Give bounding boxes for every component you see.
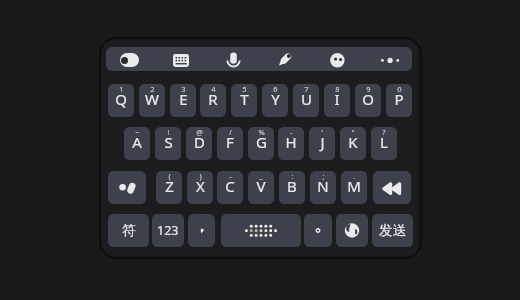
staticText: D [194, 132, 205, 152]
staticText: O [362, 89, 374, 109]
staticText: 0 [397, 84, 402, 94]
staticText: T [240, 89, 249, 109]
staticText: 123 [157, 222, 179, 239]
button[interactable]: 4 [200, 84, 226, 117]
staticText: Q [115, 89, 127, 109]
button[interactable]: 1 [108, 84, 134, 117]
button[interactable]: 123 [152, 214, 184, 247]
button[interactable]: Toggle keyboard mode [120, 53, 139, 67]
staticText: F [226, 132, 234, 152]
button[interactable]: : [279, 171, 305, 204]
staticText: ! [167, 127, 170, 137]
staticText: - [229, 171, 232, 181]
staticText: J [320, 132, 325, 152]
button[interactable]: Backspace [373, 171, 411, 204]
button[interactable]: ? [371, 127, 397, 160]
button[interactable]: 6 [262, 84, 288, 117]
button[interactable]: 7 [293, 84, 319, 117]
staticText: H [285, 132, 297, 152]
staticText: _ [259, 171, 263, 181]
staticText: @ [196, 127, 203, 137]
staticText: . [353, 171, 356, 181]
button[interactable]: - [217, 171, 243, 204]
button[interactable]: - [278, 127, 304, 160]
staticText: X [196, 176, 205, 196]
staticText: Z [165, 176, 174, 196]
staticText: : [291, 171, 294, 181]
button[interactable]: % [248, 127, 274, 160]
staticText: 5 [242, 84, 247, 94]
button[interactable]: ~ [124, 127, 150, 160]
button[interactable]: ' [309, 127, 335, 160]
staticText: ' [321, 127, 323, 137]
staticText: 9 [366, 84, 371, 94]
staticText: 发送 [379, 222, 406, 239]
staticText: 6 [273, 84, 278, 94]
staticText: % [258, 127, 265, 137]
button[interactable]: " [340, 127, 366, 160]
staticText: C [225, 176, 235, 196]
staticText: M [347, 176, 361, 196]
button[interactable]: 符 [108, 214, 149, 247]
staticText: P [394, 89, 404, 109]
button[interactable]: Emoji [330, 53, 345, 68]
staticText: 符 [122, 222, 136, 239]
button[interactable]: 3 [170, 84, 196, 117]
button[interactable]: Keyboard layout [173, 54, 189, 67]
staticText: K [348, 132, 358, 152]
button[interactable]: 8 [324, 84, 350, 117]
button[interactable]: 0 [386, 84, 412, 117]
staticText: 8 [335, 84, 340, 94]
staticText: ) [199, 171, 202, 181]
button[interactable]: Switch language [336, 214, 368, 247]
staticText: R [208, 89, 218, 109]
button[interactable]: . [341, 171, 367, 204]
button[interactable]: ; [310, 171, 336, 204]
staticText: ? [382, 127, 386, 137]
staticText: S [164, 132, 173, 152]
staticText: G [256, 132, 267, 152]
staticText: N [317, 176, 329, 196]
button[interactable]: ( [156, 171, 182, 204]
staticText: ( [168, 171, 171, 181]
staticText: - [290, 127, 293, 137]
staticText: V [256, 176, 266, 196]
staticText: ~ [135, 127, 140, 137]
staticText: E [179, 89, 188, 109]
staticText: W [145, 89, 159, 109]
staticText: " [351, 127, 355, 137]
button[interactable]: 5 [231, 84, 257, 117]
staticText: U [301, 89, 312, 109]
staticText: 1 [119, 84, 124, 94]
button[interactable]: 9 [355, 84, 381, 117]
button[interactable]: 发送 [372, 214, 413, 247]
button[interactable]: / [217, 127, 243, 160]
button[interactable]: ! [155, 127, 181, 160]
staticText: 7 [304, 84, 309, 94]
staticText: 4 [211, 84, 216, 94]
staticText: A [132, 132, 142, 152]
button[interactable]: Space [221, 214, 301, 247]
button[interactable]: Handwriting input [276, 50, 294, 69]
button[interactable]: 2 [139, 84, 165, 117]
staticText: L [380, 132, 388, 152]
button[interactable]: More options [378, 55, 402, 66]
staticText: Y [271, 89, 280, 109]
button[interactable]: _ [248, 171, 274, 204]
button[interactable]: Comma [188, 214, 215, 247]
button[interactable]: Voice input [227, 52, 240, 67]
staticText: ; [322, 171, 325, 181]
button[interactable]: Period [304, 214, 332, 247]
button[interactable]: ) [187, 171, 213, 204]
staticText: 2 [150, 84, 155, 94]
button[interactable]: @ [186, 127, 212, 160]
staticText: 3 [181, 84, 186, 94]
staticText: / [229, 127, 232, 137]
staticText: I [334, 89, 340, 109]
button[interactable]: Shift [108, 171, 146, 204]
staticText: B [287, 176, 297, 196]
